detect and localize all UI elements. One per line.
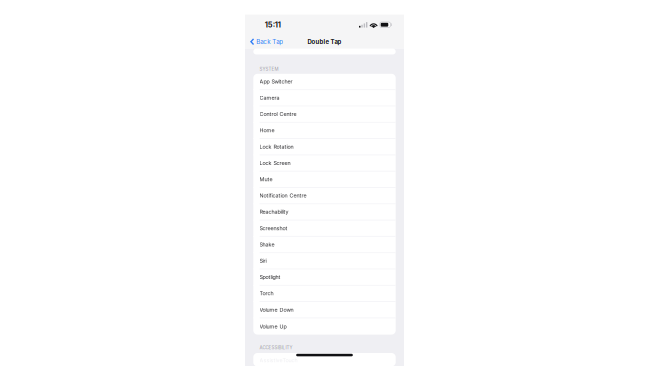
button[interactable]: App Switcher <box>253 74 396 90</box>
staticText: Volume Down <box>260 306 294 313</box>
staticText: Spotlight <box>260 274 281 280</box>
button[interactable]: Volume Down <box>253 302 396 318</box>
button[interactable]: Mute <box>253 172 396 188</box>
staticText: Home <box>260 127 275 134</box>
button[interactable]: Camera <box>253 90 396 106</box>
button[interactable]: Control Centre <box>253 106 396 123</box>
staticText: Shake <box>260 241 275 248</box>
button[interactable]: Torch <box>253 286 396 302</box>
button[interactable]: Siri <box>253 253 396 269</box>
staticText: Notification Centre <box>260 192 307 199</box>
staticText: AssistiveTouch <box>260 357 298 363</box>
button[interactable]: Back Tap <box>245 35 287 49</box>
staticText: Mute <box>260 176 273 183</box>
button[interactable]: Reachability <box>253 204 396 220</box>
button[interactable]: AssistiveTouch <box>253 351 396 366</box>
button[interactable]: Screenshot <box>253 220 396 237</box>
staticText: SYSTEM <box>260 66 279 72</box>
staticText: Reachability <box>260 209 289 215</box>
button[interactable]: Shake <box>253 237 396 253</box>
staticText: Double Tap <box>307 38 341 45</box>
staticText: Control Centre <box>260 111 297 117</box>
staticText: Screenshot <box>260 225 288 231</box>
button[interactable]: Home <box>253 123 396 139</box>
button[interactable]: Spotlight <box>253 269 396 286</box>
staticText: Lock Rotation <box>260 143 294 150</box>
staticText: 15:11 <box>265 20 281 29</box>
button[interactable]: Lock Rotation <box>253 139 396 155</box>
button[interactable]: Lock Screen <box>253 155 396 172</box>
button[interactable]: Volume Up <box>253 318 396 335</box>
staticText: Lock Screen <box>260 160 291 166</box>
staticText: Back Tap <box>256 38 283 45</box>
staticText: Torch <box>260 290 274 297</box>
staticText: Volume Up <box>260 323 287 330</box>
staticText: ACCESSIBILITY <box>260 345 293 350</box>
staticText: Siri <box>260 258 267 264</box>
button[interactable]: Notification Centre <box>253 188 396 204</box>
staticText: App Switcher <box>260 78 293 85</box>
staticText: Camera <box>260 95 280 101</box>
